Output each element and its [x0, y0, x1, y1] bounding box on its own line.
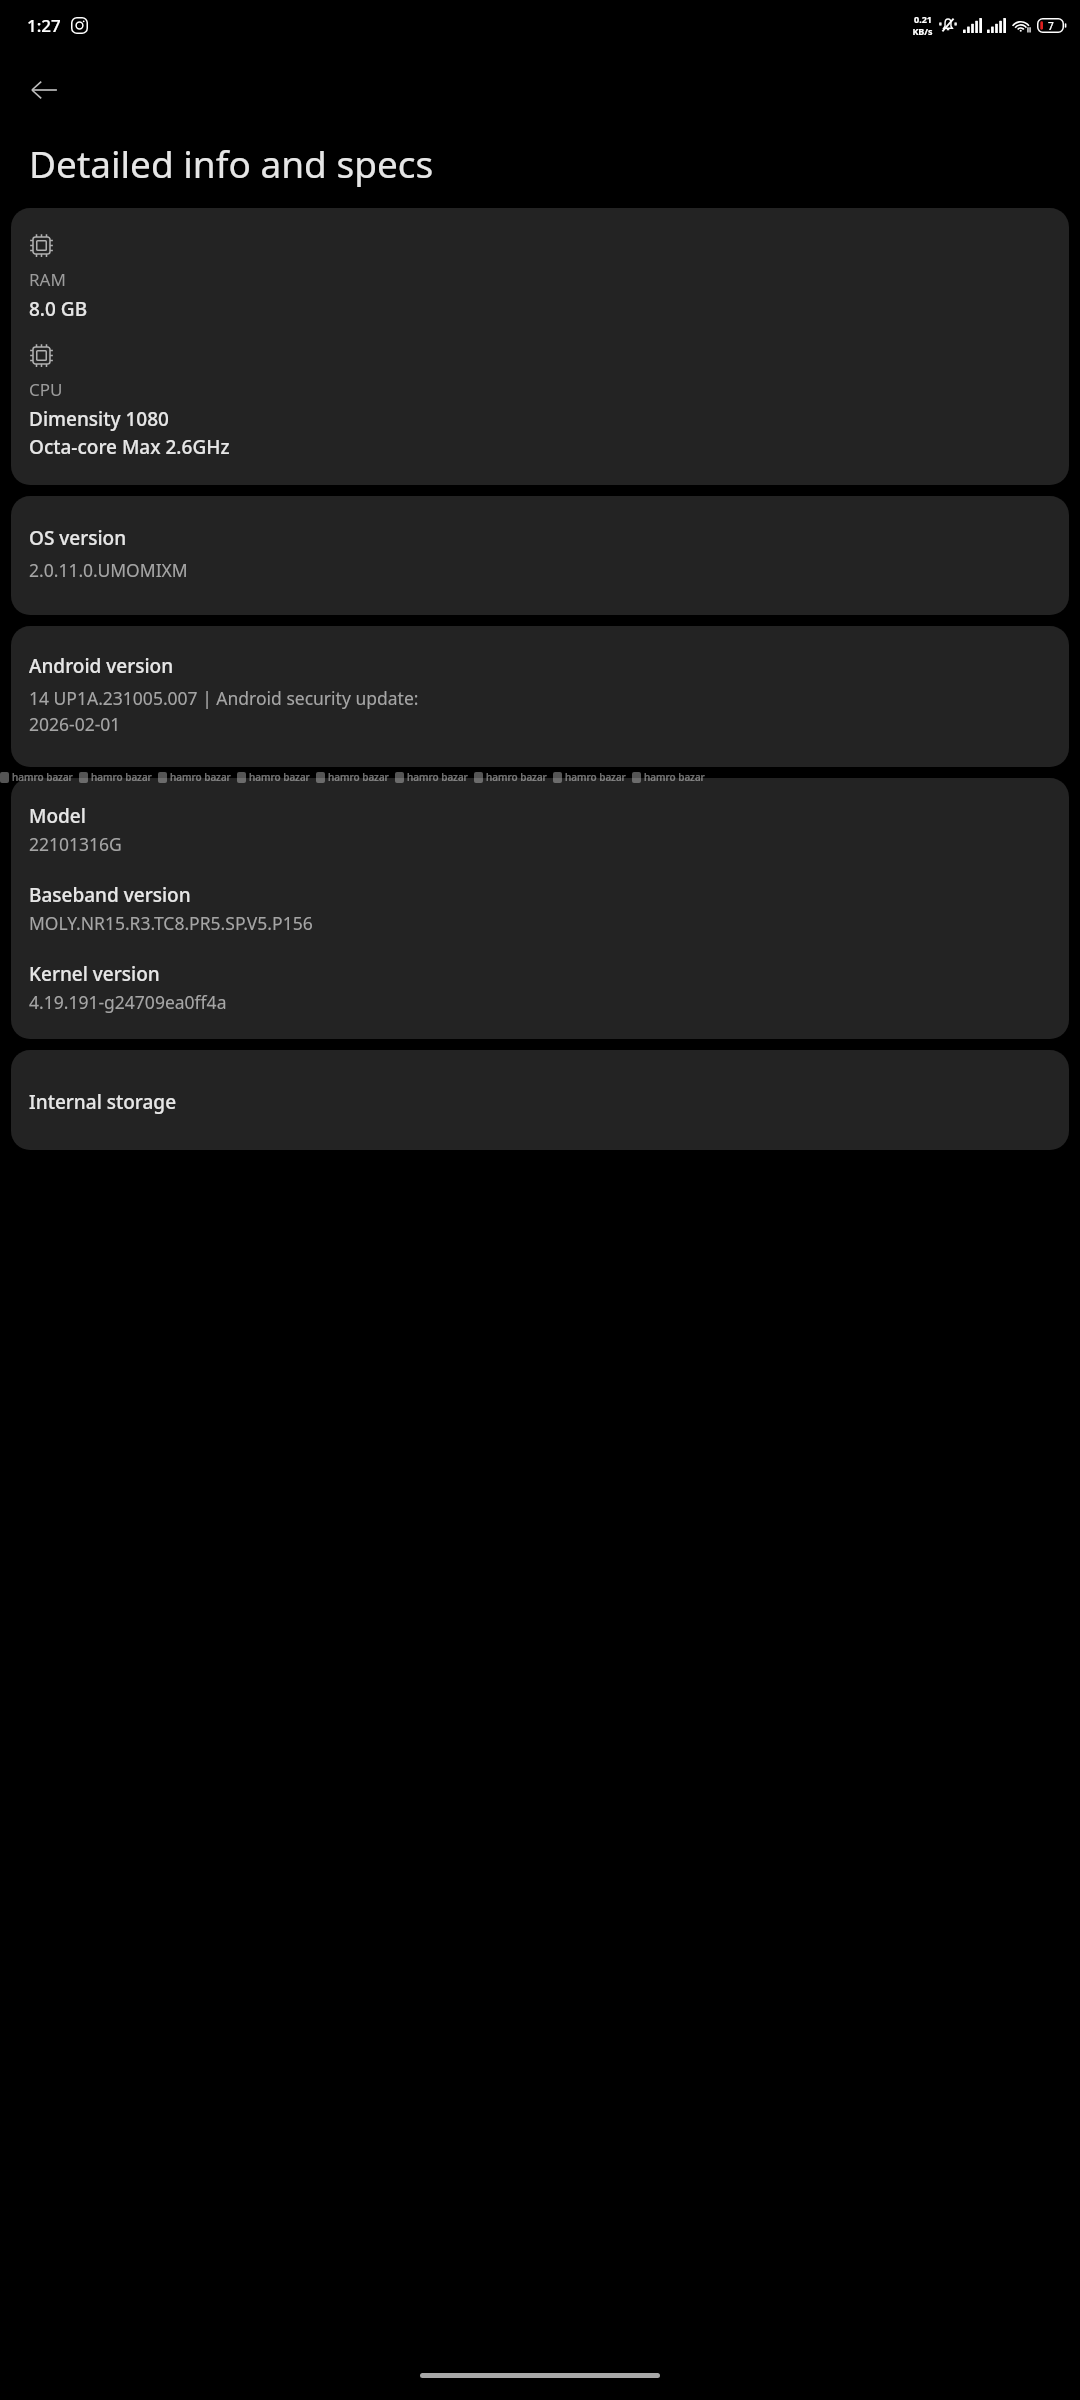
staticText: hamro bazar: [486, 770, 547, 784]
button[interactable]: Model: [11, 778, 1069, 1039]
staticText: Model: [29, 803, 86, 829]
staticText: Octa-core Max 2.6GHz: [29, 434, 230, 460]
staticText: 14 UP1A.231005.007 | Android security up…: [29, 686, 419, 710]
staticText: MOLY.NR15.R3.TC8.PR5.SP.V5.P156: [29, 911, 313, 935]
staticText: hamro bazar: [91, 770, 152, 784]
staticText: 0.21: [914, 13, 932, 25]
button[interactable]: Internal storage: [11, 1050, 1069, 1150]
button[interactable]: OS version: [11, 496, 1069, 615]
button[interactable]: Back: [16, 62, 72, 118]
staticText: 2.0.11.0.UMOMIXM: [29, 558, 188, 582]
staticText: hamro bazar: [249, 770, 310, 784]
staticText: Internal storage: [29, 1089, 177, 1115]
staticText: CPU: [29, 378, 63, 401]
staticText: Android version: [29, 653, 174, 679]
staticText: hamro bazar: [644, 770, 705, 784]
staticText: OS version: [29, 525, 127, 551]
staticText: hamro bazar: [407, 770, 468, 784]
staticText: Dimensity 1080: [29, 406, 169, 432]
staticText: 8.0 GB: [29, 296, 88, 322]
staticText: 1:27: [27, 14, 61, 37]
staticText: hamro bazar: [12, 770, 73, 784]
staticText: Kernel version: [29, 961, 160, 987]
staticText: hamro bazar: [565, 770, 626, 784]
staticText: hamro bazar: [170, 770, 231, 784]
staticText: Detailed info and specs: [29, 138, 434, 188]
staticText: 22101316G: [29, 832, 122, 856]
staticText: RAM: [29, 268, 66, 291]
button[interactable]: RAM: [11, 208, 1069, 485]
staticText: 2026-02-01: [29, 712, 121, 736]
staticText: 7: [1048, 19, 1054, 33]
button[interactable]: Android version: [11, 626, 1069, 767]
staticText: Baseband version: [29, 882, 191, 908]
staticText: hamro bazar: [328, 770, 389, 784]
staticText: KB/s: [912, 25, 933, 37]
staticText: 4.19.191-g24709ea0ff4a: [29, 990, 227, 1014]
